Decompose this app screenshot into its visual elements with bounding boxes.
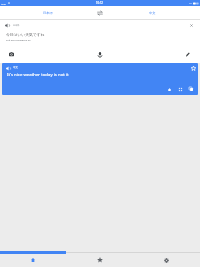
staticText: 4G (189, 2, 192, 5)
button[interactable]: Camera (6, 49, 17, 60)
button[interactable]: 中文 (104, 6, 200, 19)
button[interactable]: Listen (3, 21, 12, 30)
button[interactable]: Saved (66, 254, 133, 266)
button[interactable]: Swap languages (95, 6, 104, 19)
button[interactable]: Rate translation (165, 85, 173, 93)
button[interactable]: Handwriting (182, 49, 193, 60)
staticText: 10:12 (96, 1, 103, 5)
staticText: 日本語 (13, 24, 20, 27)
staticText: Kyō wa ii tenkidesu ne (6, 39, 31, 42)
button[interactable]: Microphone (94, 49, 105, 60)
staticText: Msg (1, 2, 6, 5)
button[interactable]: Save translation (189, 64, 198, 73)
button[interactable]: Copy (187, 85, 195, 93)
button[interactable]: Listen translation (4, 64, 12, 72)
staticText: It's nice weather today is not it (7, 71, 69, 77)
staticText: 今日はいい天気ですね (6, 32, 45, 37)
button[interactable]: Listen translation (2, 63, 198, 95)
staticText: 中文 (149, 11, 156, 15)
button[interactable]: Home (0, 254, 66, 266)
staticText: 日本語 (43, 11, 53, 15)
button[interactable]: Fullscreen (176, 85, 184, 93)
staticText: 中文 (13, 66, 18, 69)
button[interactable]: 日本語 (0, 6, 95, 19)
button[interactable]: Clear (187, 21, 196, 30)
button[interactable]: Settings (133, 254, 200, 266)
